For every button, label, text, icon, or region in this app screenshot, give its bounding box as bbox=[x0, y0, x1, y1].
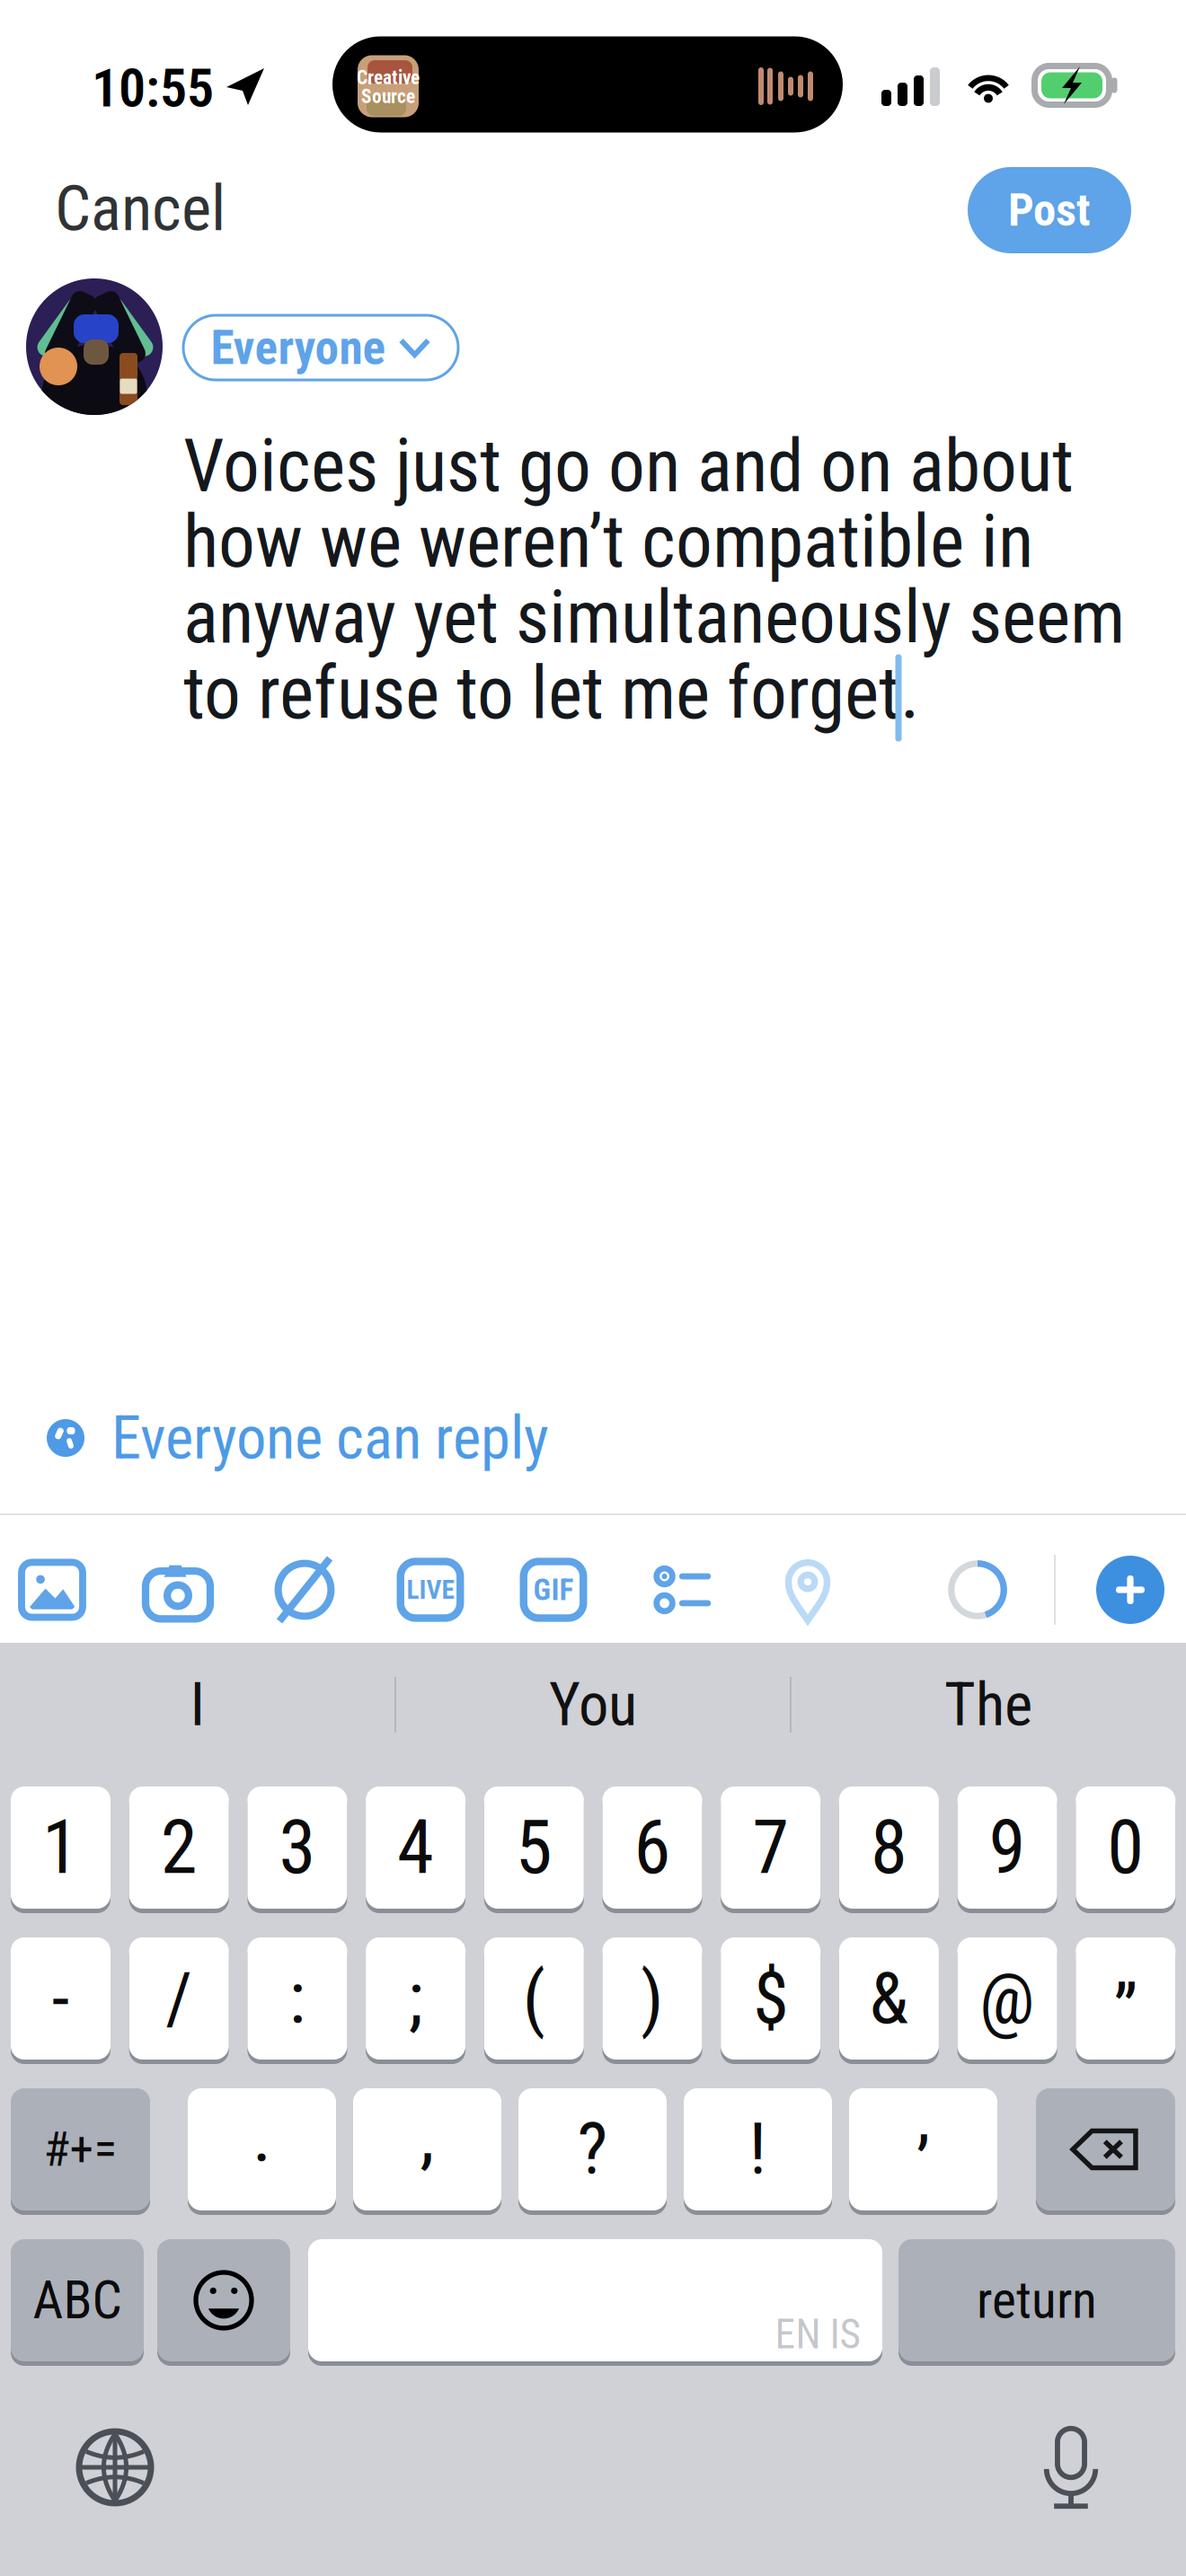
staticText: 10:55 bbox=[92, 56, 214, 120]
staticText: & bbox=[869, 1956, 909, 2041]
button[interactable]: Everyone bbox=[0, 0, 1186, 2576]
staticText: - bbox=[52, 1956, 70, 2041]
staticText: / bbox=[166, 1956, 192, 2041]
button[interactable]: 2 bbox=[0, 0, 1186, 2576]
staticText: 0 bbox=[1107, 1804, 1144, 1891]
staticText: ) bbox=[641, 1956, 664, 2041]
button[interactable]: 4 bbox=[0, 0, 1186, 2576]
staticText: ABC bbox=[33, 2269, 122, 2331]
staticText: I bbox=[190, 1670, 205, 1740]
button[interactable]: ABC bbox=[0, 0, 1186, 2576]
button[interactable]: ? bbox=[0, 0, 1186, 2576]
button[interactable]: Poll bbox=[0, 0, 1186, 2576]
staticText: 1 bbox=[42, 1804, 79, 1891]
staticText: . bbox=[252, 2095, 271, 2179]
staticText: $ bbox=[753, 1956, 788, 2041]
button[interactable]: Cancel bbox=[0, 0, 1186, 2576]
button[interactable]: Character count bbox=[0, 0, 1186, 2576]
button[interactable]: space bbox=[0, 0, 1186, 2576]
staticText: ; bbox=[408, 1956, 423, 2041]
button[interactable]: 3 bbox=[0, 0, 1186, 2576]
staticText: LIVE bbox=[407, 1574, 454, 1605]
staticText: #+= bbox=[44, 2121, 117, 2177]
staticText: Source bbox=[361, 85, 415, 108]
button[interactable]: Delete bbox=[0, 0, 1186, 2576]
staticText: Everyone bbox=[211, 320, 386, 376]
button[interactable]: 7 bbox=[0, 0, 1186, 2576]
staticText: You bbox=[549, 1670, 637, 1740]
staticText: 5 bbox=[516, 1804, 552, 1891]
button[interactable]: , bbox=[0, 0, 1186, 2576]
button[interactable]: You bbox=[0, 0, 1186, 2576]
button[interactable]: I bbox=[0, 0, 1186, 2576]
button[interactable]: ( bbox=[0, 0, 1186, 2576]
staticText: ? bbox=[577, 2107, 608, 2191]
staticText: 7 bbox=[752, 1804, 789, 1891]
button[interactable]: #+= bbox=[0, 0, 1186, 2576]
staticText: @ bbox=[979, 1956, 1035, 2041]
staticText: 9 bbox=[989, 1804, 1026, 1891]
staticText: The bbox=[944, 1670, 1032, 1740]
staticText: Post bbox=[1008, 183, 1091, 237]
staticText: 8 bbox=[871, 1804, 907, 1891]
button[interactable]: $ bbox=[0, 0, 1186, 2576]
button[interactable]: ) bbox=[0, 0, 1186, 2576]
button[interactable]: @ bbox=[0, 0, 1186, 2576]
staticText: 6 bbox=[634, 1804, 671, 1891]
staticText: 4 bbox=[397, 1804, 434, 1891]
button[interactable]: Add post bbox=[0, 0, 1186, 2576]
button[interactable]: 6 bbox=[0, 0, 1186, 2576]
button[interactable]: 0 bbox=[0, 0, 1186, 2576]
button[interactable]: The bbox=[0, 0, 1186, 2576]
button[interactable]: ’ bbox=[0, 0, 1186, 2576]
staticText: Cancel bbox=[55, 171, 226, 246]
staticText: 3 bbox=[279, 1804, 316, 1891]
button[interactable]: Location bbox=[0, 0, 1186, 2576]
button[interactable]: return bbox=[0, 0, 1186, 2576]
button[interactable]: & bbox=[0, 0, 1186, 2576]
button[interactable]: 1 bbox=[0, 0, 1186, 2576]
button[interactable]: Everyone can reply bbox=[0, 0, 1186, 2576]
staticText: GIF bbox=[533, 1572, 574, 1607]
staticText: EN IS bbox=[775, 2310, 861, 2358]
staticText: ” bbox=[1113, 1969, 1138, 2053]
button[interactable]: 5 bbox=[0, 0, 1186, 2576]
button[interactable]: / bbox=[0, 0, 1186, 2576]
button[interactable]: Next keyboard bbox=[0, 0, 1186, 2576]
button[interactable]: Live bbox=[0, 0, 1186, 2576]
button[interactable]: Emoji bbox=[0, 0, 1186, 2576]
staticText: return bbox=[977, 2270, 1097, 2330]
staticText: Creative bbox=[357, 66, 420, 89]
staticText: Everyone can reply bbox=[111, 1403, 549, 1473]
staticText: 2 bbox=[161, 1804, 197, 1891]
staticText: ’ bbox=[916, 2122, 930, 2206]
button[interactable]: Filters bbox=[0, 0, 1186, 2576]
button[interactable]: Dictate bbox=[0, 0, 1186, 2576]
button[interactable]: 8 bbox=[0, 0, 1186, 2576]
button[interactable]: ; bbox=[0, 0, 1186, 2576]
button[interactable]: Camera bbox=[0, 0, 1186, 2576]
staticText: , bbox=[420, 2095, 434, 2179]
staticText: ! bbox=[749, 2107, 767, 2191]
button[interactable]: Post bbox=[0, 0, 1186, 2576]
button[interactable]: Photos bbox=[0, 0, 1186, 2576]
staticText: : bbox=[289, 1956, 306, 2041]
staticText: ( bbox=[523, 1956, 545, 2041]
button[interactable]: 9 bbox=[0, 0, 1186, 2576]
button[interactable]: - bbox=[0, 0, 1186, 2576]
button[interactable]: : bbox=[0, 0, 1186, 2576]
button[interactable]: GIF bbox=[0, 0, 1186, 2576]
button[interactable]: ! bbox=[0, 0, 1186, 2576]
button[interactable]: . bbox=[0, 0, 1186, 2576]
staticText: Voices just go on and on about how we we… bbox=[183, 423, 1125, 736]
button[interactable]: ” bbox=[0, 0, 1186, 2576]
